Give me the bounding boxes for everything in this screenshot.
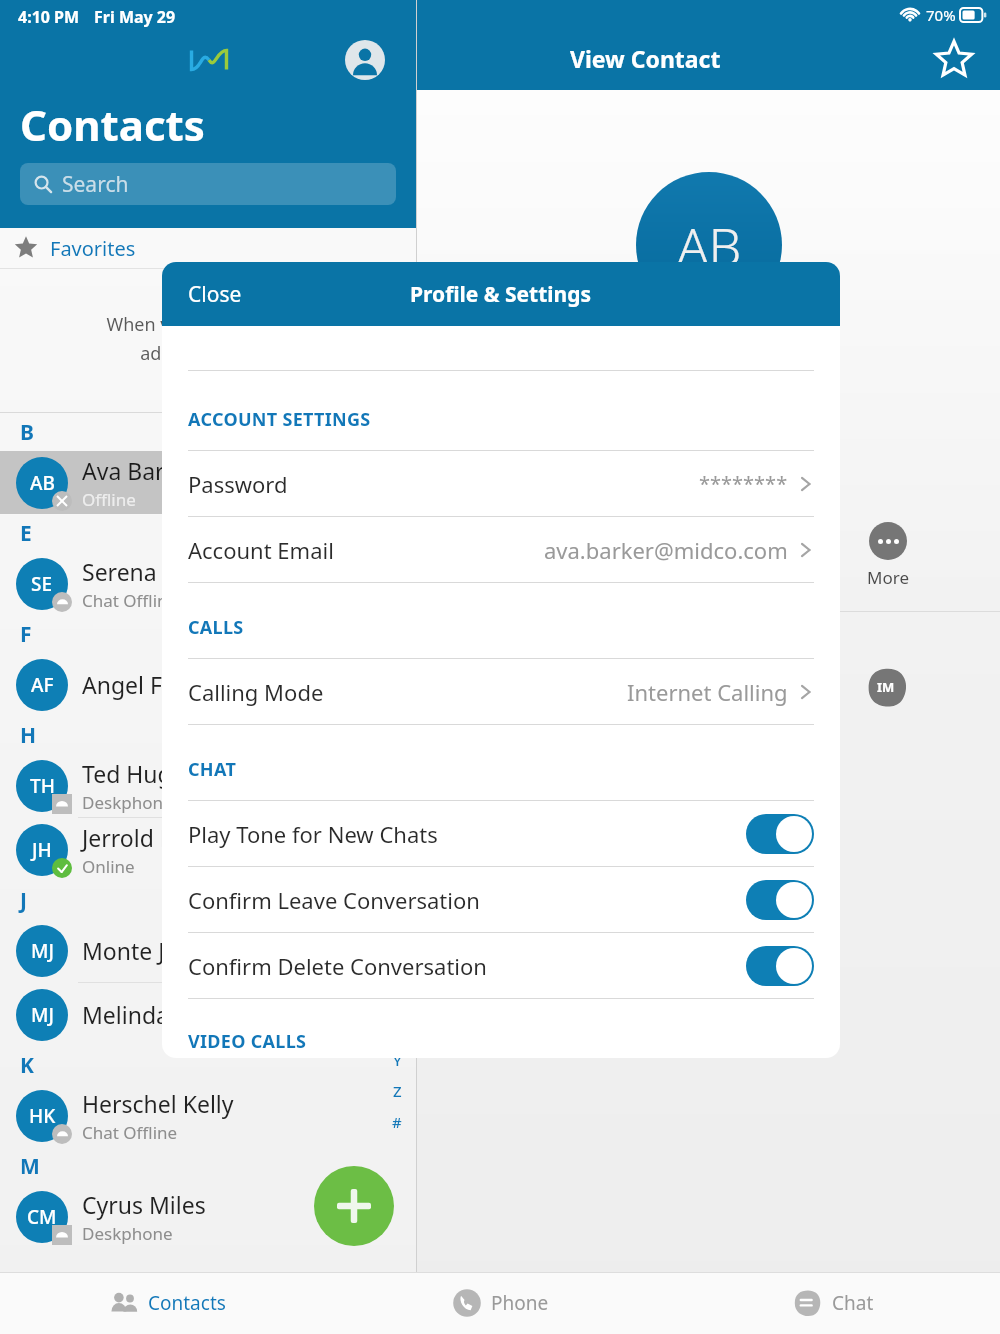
staticText: CHAT — [188, 757, 237, 782]
staticText: 4:10 PM — [18, 6, 80, 28]
staticText: SE — [31, 571, 53, 597]
staticText: Deskphone — [82, 791, 173, 814]
staticText: B — [20, 418, 34, 447]
button[interactable]: JH — [0, 818, 417, 881]
staticText: Herschel Kelly — [82, 1088, 234, 1119]
staticText: Offline — [82, 488, 136, 511]
button[interactable]: MJ — [0, 919, 417, 982]
staticText: Favorites — [50, 235, 136, 262]
button[interactable]: Close — [188, 280, 242, 309]
button[interactable]: Favorite — [930, 36, 978, 84]
staticText: V — [392, 957, 402, 977]
staticText: Contacts — [20, 96, 205, 153]
button[interactable]: Search — [20, 163, 396, 205]
staticText: 70% — [926, 5, 956, 25]
staticText: HK — [29, 1103, 56, 1129]
staticText: Profile & Settings — [410, 280, 592, 309]
button[interactable]: HK — [0, 1084, 417, 1147]
staticText: ACCOUNT SETTINGS — [188, 407, 371, 432]
staticText: VIDEO CALLS — [188, 1029, 307, 1054]
button[interactable]: Favorites — [0, 228, 417, 268]
staticText: M — [20, 1152, 40, 1181]
button[interactable]: Phone — [334, 1272, 667, 1334]
staticText: Account Email — [188, 535, 334, 565]
staticText: S — [393, 864, 402, 884]
button[interactable]: Instant message — [866, 666, 910, 710]
staticText: Melinda Jarvis — [82, 999, 233, 1030]
button[interactable]: SE — [0, 552, 417, 615]
staticText: Deskphone — [82, 1222, 173, 1245]
staticText: Confirm Delete Conversation — [188, 951, 487, 981]
staticText: Password — [188, 469, 288, 499]
staticText: Calling Mode — [188, 677, 324, 707]
staticText: AF — [31, 672, 54, 698]
staticText: Chat Offline — [82, 1121, 178, 1144]
staticText: Angel Fletcher — [82, 669, 237, 700]
button[interactable]: Calling Mode — [162, 659, 840, 724]
staticText: View Contact — [570, 43, 721, 74]
staticText: CM — [27, 1204, 57, 1230]
staticText: L — [393, 647, 402, 667]
staticText: IM — [877, 678, 895, 696]
staticText: MJ — [31, 1002, 54, 1028]
staticText: add to favorites. — [140, 341, 278, 366]
button[interactable]: Confirm Delete Conversation — [162, 933, 840, 998]
button[interactable]: More — [846, 522, 930, 589]
staticText: Phone — [491, 1290, 549, 1316]
staticText: Online — [82, 855, 135, 878]
staticText: AB — [677, 210, 742, 281]
staticText: Fri May 29 — [94, 6, 176, 28]
staticText: J — [20, 886, 27, 915]
button[interactable]: TH — [0, 754, 417, 817]
button[interactable]: Add contact — [314, 1166, 394, 1246]
staticText: Internet Calling — [627, 677, 788, 707]
staticText: Contacts — [148, 1290, 226, 1316]
button[interactable]: Contacts — [0, 1272, 334, 1334]
staticText: C — [392, 368, 402, 388]
staticText: JH — [32, 837, 52, 863]
staticText: Ted Hughes — [82, 758, 210, 789]
staticText: Chat Offline — [82, 589, 178, 612]
staticText: ******** — [699, 470, 788, 497]
button[interactable]: AB — [0, 451, 417, 514]
staticText: More — [867, 566, 909, 589]
staticText: F — [20, 620, 32, 649]
staticText: Y — [393, 1050, 402, 1070]
button[interactable]: Password — [162, 451, 840, 516]
staticText: CALLS — [188, 615, 244, 640]
button[interactable]: AF — [0, 653, 417, 716]
button[interactable]: MJ — [0, 983, 417, 1046]
button[interactable]: Confirm Leave Conversation — [162, 867, 840, 932]
staticText: When viewing a contact, — [106, 312, 312, 337]
button[interactable]: Account Email — [162, 517, 840, 582]
staticText: MJ — [31, 938, 54, 964]
staticText: Cyrus Miles — [82, 1189, 206, 1220]
staticText: AB — [30, 470, 55, 496]
staticText: W — [390, 988, 405, 1008]
staticText: Monte Jones — [82, 935, 217, 966]
staticText: # — [392, 1112, 402, 1132]
staticText: Confirm Leave Conversation — [188, 885, 480, 915]
staticText: U — [391, 926, 403, 946]
staticText: TH — [30, 773, 55, 799]
button[interactable]: CM — [0, 1185, 417, 1248]
button[interactable]: Play Tone for New Chats — [162, 801, 840, 866]
button[interactable]: Chat — [667, 1272, 1000, 1334]
staticText: Jerrold Hall — [82, 822, 202, 853]
staticText: Search — [62, 170, 129, 199]
staticText: R — [392, 833, 402, 853]
button[interactable]: Profile and settings — [341, 36, 389, 84]
staticText: K — [20, 1051, 34, 1080]
